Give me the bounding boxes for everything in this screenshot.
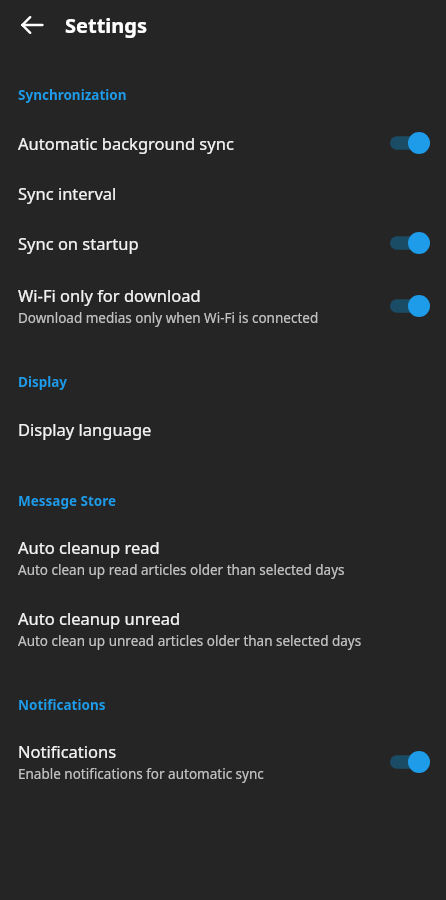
- staticText: Settings: [65, 12, 147, 39]
- button[interactable]: Sync interval: [0, 164, 446, 214]
- staticText: Enable notifications for automatic sync: [18, 765, 264, 783]
- staticText: Display: [18, 373, 68, 391]
- staticText: Synchronization: [18, 86, 127, 104]
- staticText: Wi-Fi only for download: [18, 284, 201, 306]
- button[interactable]: Notifications: [0, 714, 446, 793]
- button[interactable]: Automatic background sync: [0, 104, 446, 164]
- staticText: Display language: [18, 418, 152, 440]
- button[interactable]: Back: [10, 3, 54, 47]
- staticText: Notifications: [18, 740, 117, 762]
- button[interactable]: Wi-Fi only for download: [0, 264, 446, 337]
- button[interactable]: Auto cleanup unread: [0, 589, 446, 660]
- staticText: Sync interval: [18, 182, 117, 204]
- button[interactable]: Auto cleanup read: [0, 510, 446, 589]
- staticText: Auto cleanup unread: [18, 607, 181, 629]
- staticText: Automatic background sync: [18, 132, 234, 154]
- staticText: Auto cleanup read: [18, 536, 160, 558]
- staticText: Auto clean up unread articles older than…: [18, 632, 362, 650]
- staticText: Sync on startup: [18, 232, 139, 254]
- staticText: Auto clean up read articles older than s…: [18, 561, 345, 579]
- staticText: Download medias only when Wi-Fi is conne…: [18, 309, 319, 327]
- button[interactable]: Sync on startup: [0, 214, 446, 264]
- button[interactable]: Display language: [0, 391, 446, 450]
- staticText: Notifications: [18, 696, 106, 714]
- staticText: Message Store: [18, 492, 117, 510]
